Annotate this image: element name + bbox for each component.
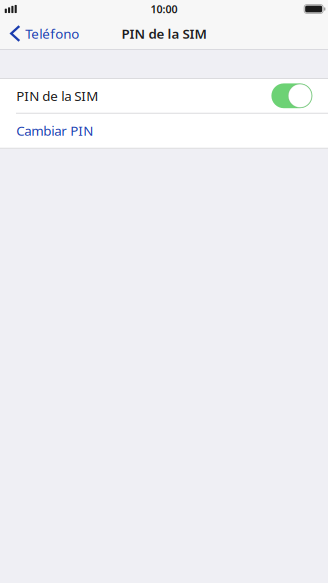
staticText: Cambiar PIN [16, 122, 93, 139]
staticText: PIN de la SIM [121, 25, 206, 42]
staticText: Teléfono [25, 25, 79, 42]
staticText: PIN de la SIM [16, 87, 98, 105]
button[interactable]: Teléfono [0, 18, 87, 49]
button[interactable]: PIN de la SIM [0, 79, 328, 113]
button[interactable]: Cambiar PIN [0, 114, 328, 148]
staticText: 10:00 [150, 2, 177, 16]
